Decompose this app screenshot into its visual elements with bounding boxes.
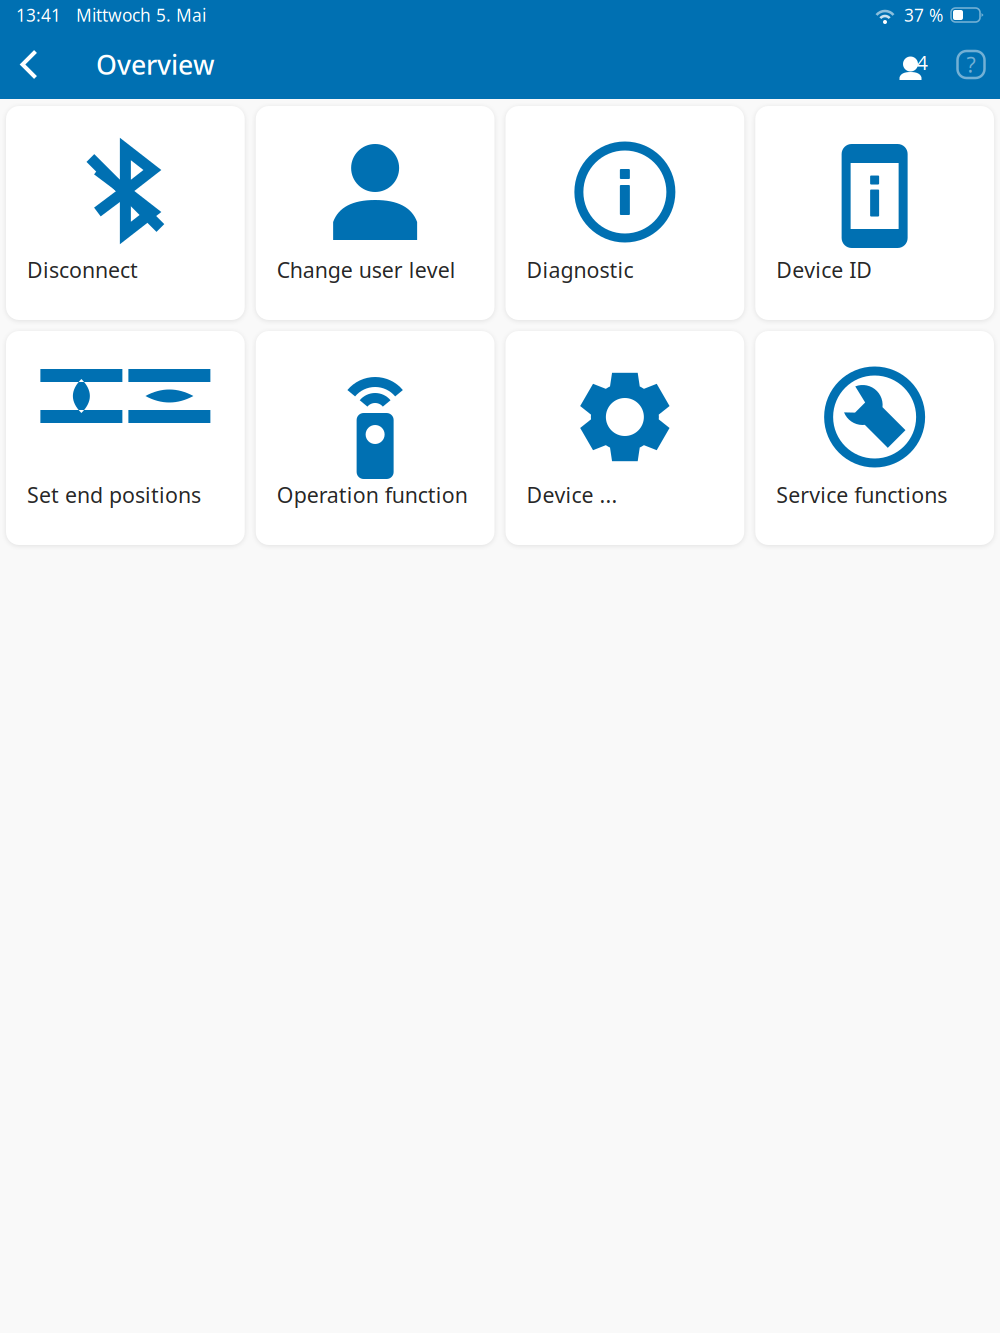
staticText: Service functions [776,481,947,509]
button[interactable]: Back [0,30,58,99]
staticText: Device ID [776,256,872,284]
staticText: 4 [916,49,927,76]
button[interactable]: Operation function [256,331,495,545]
staticText: Overview [96,47,215,82]
button[interactable]: Disconnect [6,106,245,320]
button[interactable]: Set end positions [6,331,245,545]
staticText: Diagnostic [526,256,633,284]
button[interactable]: Device ... [505,331,744,545]
button[interactable]: Help [942,30,1000,99]
staticText: Device ... [526,481,617,509]
staticText: Disconnect [27,256,138,284]
button[interactable]: Change user level [256,106,495,320]
staticText: Change user level [277,256,456,284]
button[interactable]: Device ID [755,106,994,320]
staticText: ? [966,50,975,79]
button[interactable]: Users [886,30,942,99]
button[interactable]: Diagnostic [505,106,744,320]
staticText: Mittwoch 5. Mai [61,3,206,26]
staticText: 13:41 [16,3,61,26]
button[interactable]: Service functions [755,331,994,545]
staticText: Set end positions [27,481,201,509]
staticText: Operation function [277,481,468,509]
staticText: 37 % [904,3,943,26]
